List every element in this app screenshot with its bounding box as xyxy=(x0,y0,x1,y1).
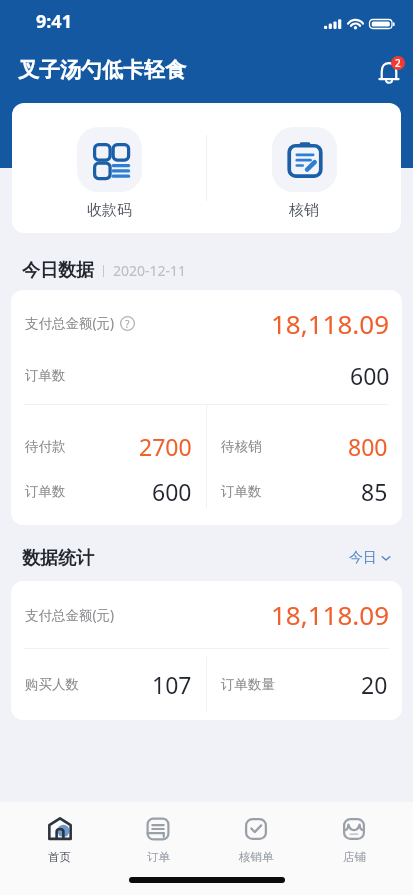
staticText: 首页 xyxy=(48,850,71,864)
staticText: 店铺 xyxy=(343,850,366,864)
staticText: ? xyxy=(125,317,130,331)
staticText: 订单数 xyxy=(221,483,262,500)
button[interactable]: 核销单 xyxy=(207,816,305,864)
staticText: 叉子汤勺低卡轻食 xyxy=(18,57,186,83)
staticText: 85 xyxy=(361,476,388,507)
button[interactable]: 店铺 xyxy=(305,816,403,864)
staticText: 待付款 xyxy=(25,438,66,455)
staticText: 数据统计 xyxy=(22,547,94,570)
staticText: 订单数 xyxy=(25,367,66,384)
staticText: 购买人数 xyxy=(25,676,79,693)
button[interactable]: Notifications xyxy=(370,53,408,91)
button[interactable]: 收款码 xyxy=(12,103,206,220)
staticText: 核销单 xyxy=(239,850,274,864)
staticText: 600 xyxy=(350,360,390,391)
staticText: 今日 xyxy=(349,549,377,567)
staticText: 2700 xyxy=(139,431,192,462)
staticText: 2 xyxy=(395,56,401,70)
staticText: 待核销 xyxy=(221,438,262,455)
button[interactable]: 首页 xyxy=(10,816,109,864)
staticText: 今日数据 xyxy=(22,259,94,282)
staticText: 9:41 xyxy=(36,9,72,34)
staticText: 订单数 xyxy=(25,483,66,500)
button[interactable]: 订单 xyxy=(109,816,207,864)
staticText: 107 xyxy=(152,669,192,700)
staticText: 收款码 xyxy=(87,201,132,220)
staticText: 18,118.09 xyxy=(271,306,390,341)
staticText: 支付总金额(元) xyxy=(25,606,115,624)
staticText: 核销 xyxy=(289,201,319,220)
staticText: 订单数量 xyxy=(221,676,275,693)
staticText: 支付总金额(元) xyxy=(25,314,115,332)
staticText: 2020-12-11 xyxy=(113,261,187,280)
staticText: 800 xyxy=(348,431,388,462)
staticText: 600 xyxy=(152,476,192,507)
button[interactable]: 核销 xyxy=(207,103,401,220)
button[interactable]: 今日 xyxy=(349,549,391,567)
staticText: 订单 xyxy=(147,850,170,864)
staticText: 18,118.09 xyxy=(271,597,390,632)
staticText: 20 xyxy=(361,669,388,700)
